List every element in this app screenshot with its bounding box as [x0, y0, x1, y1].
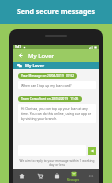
- button[interactable]: Back: [17, 52, 24, 59]
- staticText: Your Message on 28/04/2019 07:52: [21, 74, 74, 78]
- button[interactable]: More: [82, 169, 99, 183]
- staticText: Team Consultant on 28/04/2019 11:05: [21, 97, 79, 101]
- staticText: 9:41: [15, 45, 21, 49]
- button[interactable]: Saved: [48, 169, 65, 183]
- staticText: We aim to reply to your message within 1…: [18, 159, 96, 167]
- staticText: Send secure messages: [17, 7, 96, 17]
- button[interactable]: Messages: [65, 169, 82, 183]
- staticText: Messages: [67, 178, 80, 182]
- staticText: My Lover: [25, 63, 45, 69]
- staticText: My Lover: [28, 52, 55, 60]
- staticText: When can I top up my loan card?: [21, 83, 72, 87]
- button[interactable]: Shop: [31, 169, 48, 183]
- button[interactable]: Home: [13, 169, 31, 183]
- button[interactable]: Send: [88, 147, 96, 155]
- staticText: Hi Clarissa, you can top up your loan at…: [21, 106, 93, 121]
